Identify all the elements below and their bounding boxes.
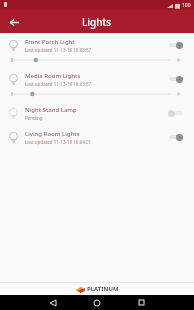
button[interactable]: Brightness <box>12 56 185 64</box>
staticText: Last updated 11-13-18 10:03:57 <box>25 47 92 53</box>
button[interactable]: Home <box>82 295 112 310</box>
button[interactable]: Turn off <box>167 131 189 143</box>
staticText: Pending <box>25 115 43 121</box>
button[interactable]: Back <box>38 295 68 310</box>
staticText: Living Room Lights <box>25 130 80 138</box>
staticText: Media Room Lights <box>25 72 81 80</box>
button[interactable]: Living Room Lights <box>0 125 194 149</box>
staticText: Front Porch Light <box>25 38 75 46</box>
button[interactable]: Back <box>4 12 24 32</box>
staticText: PLATINUM <box>87 285 119 293</box>
staticText: 100 <box>182 2 191 9</box>
button[interactable]: Media Room Lights <box>0 67 194 101</box>
button[interactable]: Turn off <box>167 39 189 51</box>
button[interactable]: Front Porch Light <box>0 33 194 67</box>
staticText: Last updated 11-13-18 10:04:01 <box>25 139 92 145</box>
button[interactable]: Brightness <box>12 90 185 98</box>
staticText: Last updated 11-13-18 10:03:57 <box>25 81 92 87</box>
button[interactable]: Recent apps <box>126 295 156 310</box>
button[interactable]: Turn on <box>167 107 189 119</box>
staticText: Night Stand Lamp <box>25 106 77 114</box>
staticText: Lights <box>82 15 112 29</box>
button[interactable]: Turn off <box>167 73 189 85</box>
button[interactable]: Night Stand Lamp <box>0 101 194 125</box>
